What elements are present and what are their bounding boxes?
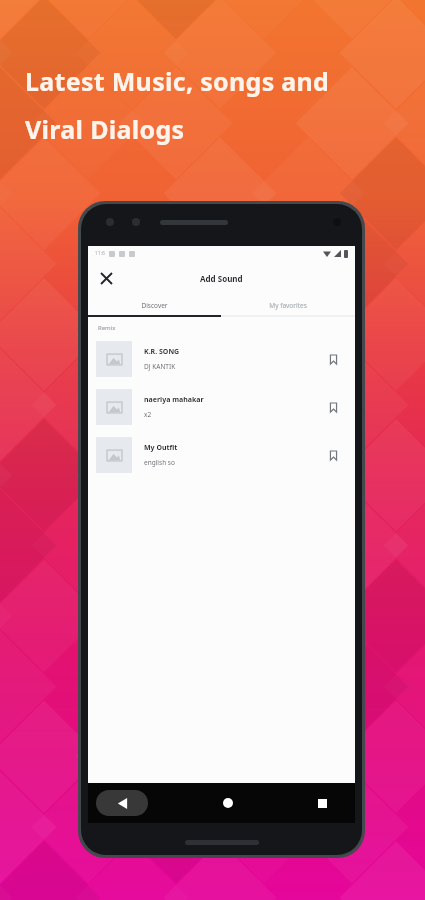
staticText: My favorites — [269, 301, 307, 310]
button[interactable]: K.R. SONG — [88, 335, 355, 383]
button[interactable]: Save — [320, 442, 346, 468]
staticText: Viral Dialogs — [25, 112, 185, 146]
button[interactable]: My Outfit — [88, 431, 355, 479]
staticText: Remix — [98, 324, 116, 332]
button[interactable]: Save — [320, 346, 346, 372]
staticText: DJ KANTIK — [144, 362, 176, 371]
staticText: K.R. SONG — [144, 347, 180, 357]
button[interactable]: Home — [213, 788, 243, 818]
button[interactable]: Back — [96, 790, 148, 816]
staticText: naeriya mahakar — [144, 395, 204, 405]
staticText: My Outfit — [144, 443, 178, 453]
button[interactable]: naeriya mahakar — [88, 383, 355, 431]
button[interactable]: Discover — [88, 295, 221, 315]
staticText: Discover — [141, 301, 168, 310]
button[interactable]: Recents — [307, 788, 337, 818]
button[interactable]: Close — [93, 265, 119, 291]
button[interactable]: Save — [320, 394, 346, 420]
staticText: Add Sound — [200, 273, 243, 284]
button[interactable]: My favorites — [221, 295, 355, 315]
staticText: Latest Music, songs and — [25, 64, 330, 98]
staticText: x2 — [144, 410, 152, 419]
staticText: 11:6 — [95, 250, 105, 257]
staticText: english so — [144, 458, 175, 467]
